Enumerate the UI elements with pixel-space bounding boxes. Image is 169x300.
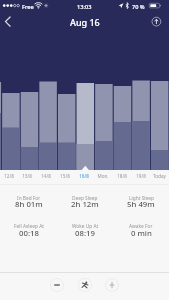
staticText: 8h 01m	[15, 199, 43, 210]
staticText: Woke Up At	[72, 223, 99, 230]
button[interactable]: In Bed For	[0, 196, 57, 210]
button[interactable]: Add	[105, 278, 119, 292]
button[interactable]: Decrease	[50, 278, 64, 292]
staticText: Free	[22, 3, 34, 11]
button[interactable]: Woke Up At	[57, 224, 113, 238]
staticText: 08:19	[75, 228, 95, 239]
staticText: Aug 16	[70, 16, 100, 28]
button[interactable]: Awake For	[113, 224, 169, 238]
staticText: 16/8	[79, 173, 89, 179]
button[interactable]: Fell Asleep At	[0, 224, 57, 238]
staticText: 5h 49m	[127, 199, 155, 210]
staticText: 70 %	[132, 3, 145, 11]
staticText: 00:18	[19, 228, 39, 239]
staticText: Today	[153, 173, 166, 179]
button[interactable]: Back	[0, 11, 18, 32]
staticText: 18/8	[117, 173, 127, 179]
staticText: Mon.	[97, 173, 109, 179]
button[interactable]: Share	[149, 11, 169, 32]
staticText: 13:03	[77, 3, 92, 11]
staticText: Fell Asleep At	[14, 223, 44, 230]
staticText: 15/8	[60, 173, 70, 179]
staticText: 0 min	[131, 228, 152, 239]
staticText: 19/8	[136, 173, 146, 179]
button[interactable]: Light Sleep	[113, 196, 169, 210]
staticText: 13/8	[22, 173, 32, 179]
button[interactable]: Activity	[78, 278, 92, 292]
staticText: Deep Sleep	[72, 195, 98, 202]
staticText: Light Sleep	[129, 195, 154, 202]
staticText: 12/8	[4, 173, 14, 179]
staticText: 14/8	[41, 173, 51, 179]
staticText: 2h 12m	[71, 199, 99, 210]
staticText: Awake For	[129, 223, 153, 230]
staticText: In Bed For	[17, 195, 41, 202]
button[interactable]: Deep Sleep	[57, 196, 113, 210]
